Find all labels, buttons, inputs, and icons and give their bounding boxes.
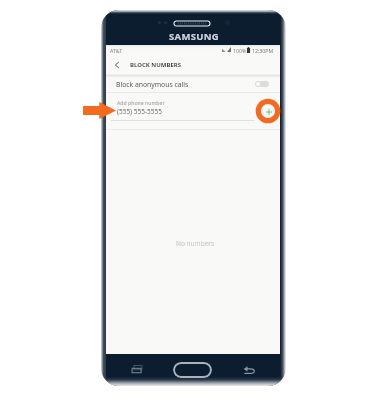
- staticText: AT&T: [110, 47, 123, 54]
- button[interactable]: Back: [243, 366, 255, 374]
- staticText: (555) 555-5555: [117, 107, 162, 116]
- other: Navigate up: [114, 61, 120, 69]
- button[interactable]: Navigate up: [106, 54, 280, 75]
- staticText: Add phone number: [117, 99, 165, 106]
- staticText: Block anonymous calls: [116, 80, 189, 89]
- staticText: 12:30PM: [252, 47, 274, 54]
- staticText: BLOCK NUMBERS: [130, 61, 182, 69]
- button[interactable]: Block anonymous calls: [106, 76, 280, 92]
- staticText: SAMSUNG: [169, 30, 219, 41]
- button[interactable]: Add number: [262, 105, 275, 118]
- button[interactable]: Recent apps: [130, 364, 143, 375]
- staticText: 100%: [233, 47, 247, 54]
- button[interactable]: Home: [173, 362, 212, 378]
- staticText: No numbers: [176, 239, 215, 248]
